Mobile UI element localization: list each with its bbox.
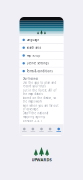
staticText: Use the app to plan and record your trip… (22, 81, 56, 88)
staticText: stored on the device, so the maps work (22, 96, 56, 103)
button[interactable]: Settings (54, 128, 63, 132)
staticText: Search area (26, 46, 40, 49)
staticText: Data © the national mapping agency. (22, 111, 48, 119)
button[interactable]: Map (20, 128, 29, 132)
button[interactable]: Search area (19, 44, 63, 52)
button[interactable]: Terms & conditions (19, 67, 63, 75)
staticText: Version 2.4.1 (22, 119, 42, 123)
button[interactable]: Map setup (19, 52, 63, 60)
staticText: UPWARDS (31, 157, 51, 162)
button[interactable]: Search (29, 128, 37, 132)
button[interactable]: Licence settings (19, 60, 63, 67)
button[interactable]: Language (19, 36, 63, 44)
staticText: Terms & conditions (26, 69, 52, 73)
staticText: out in the forest. All of the map data i… (22, 89, 56, 96)
staticText: Our licence (22, 77, 38, 80)
button[interactable]: Saved (37, 128, 46, 132)
staticText: Map setup (26, 54, 40, 57)
button[interactable]: Alerts (46, 128, 54, 132)
staticText: Licence settings (26, 61, 48, 65)
staticText: even when you are far out of coverage. (22, 104, 58, 111)
staticText: Language (26, 38, 39, 42)
